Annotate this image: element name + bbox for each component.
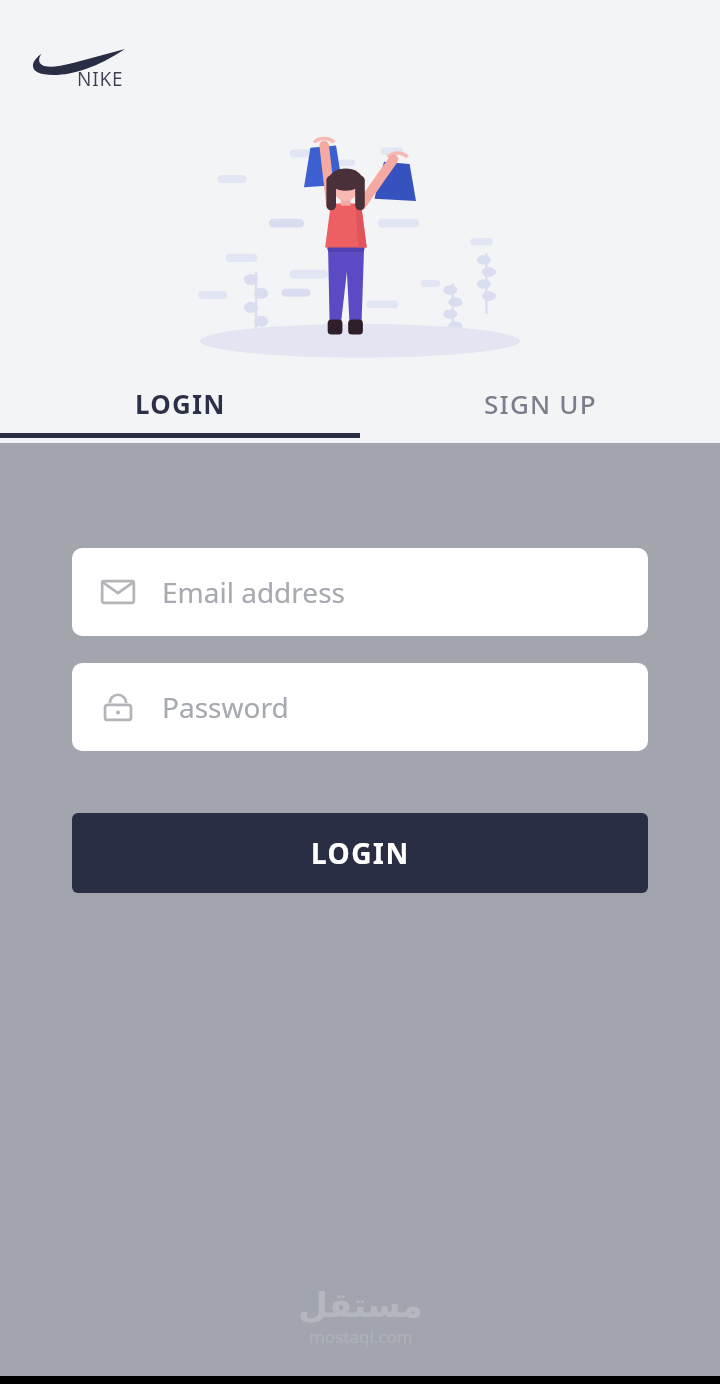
staticText: SIGN UP (484, 386, 597, 421)
button[interactable]: Password (72, 663, 648, 751)
staticText: mostaql.com (309, 1325, 413, 1348)
staticText: NIKE (77, 66, 124, 92)
other: Nike logo (28, 42, 128, 92)
button[interactable]: Email address (72, 548, 648, 636)
staticText: Email address (162, 573, 345, 611)
staticText: Password (162, 688, 289, 726)
button[interactable]: LOGIN (72, 813, 648, 893)
button[interactable]: SIGN UP (360, 372, 720, 434)
staticText: LOGIN (135, 386, 226, 421)
button[interactable]: LOGIN (0, 372, 360, 434)
staticText: مستقل (298, 1285, 423, 1325)
staticText: LOGIN (311, 834, 410, 872)
